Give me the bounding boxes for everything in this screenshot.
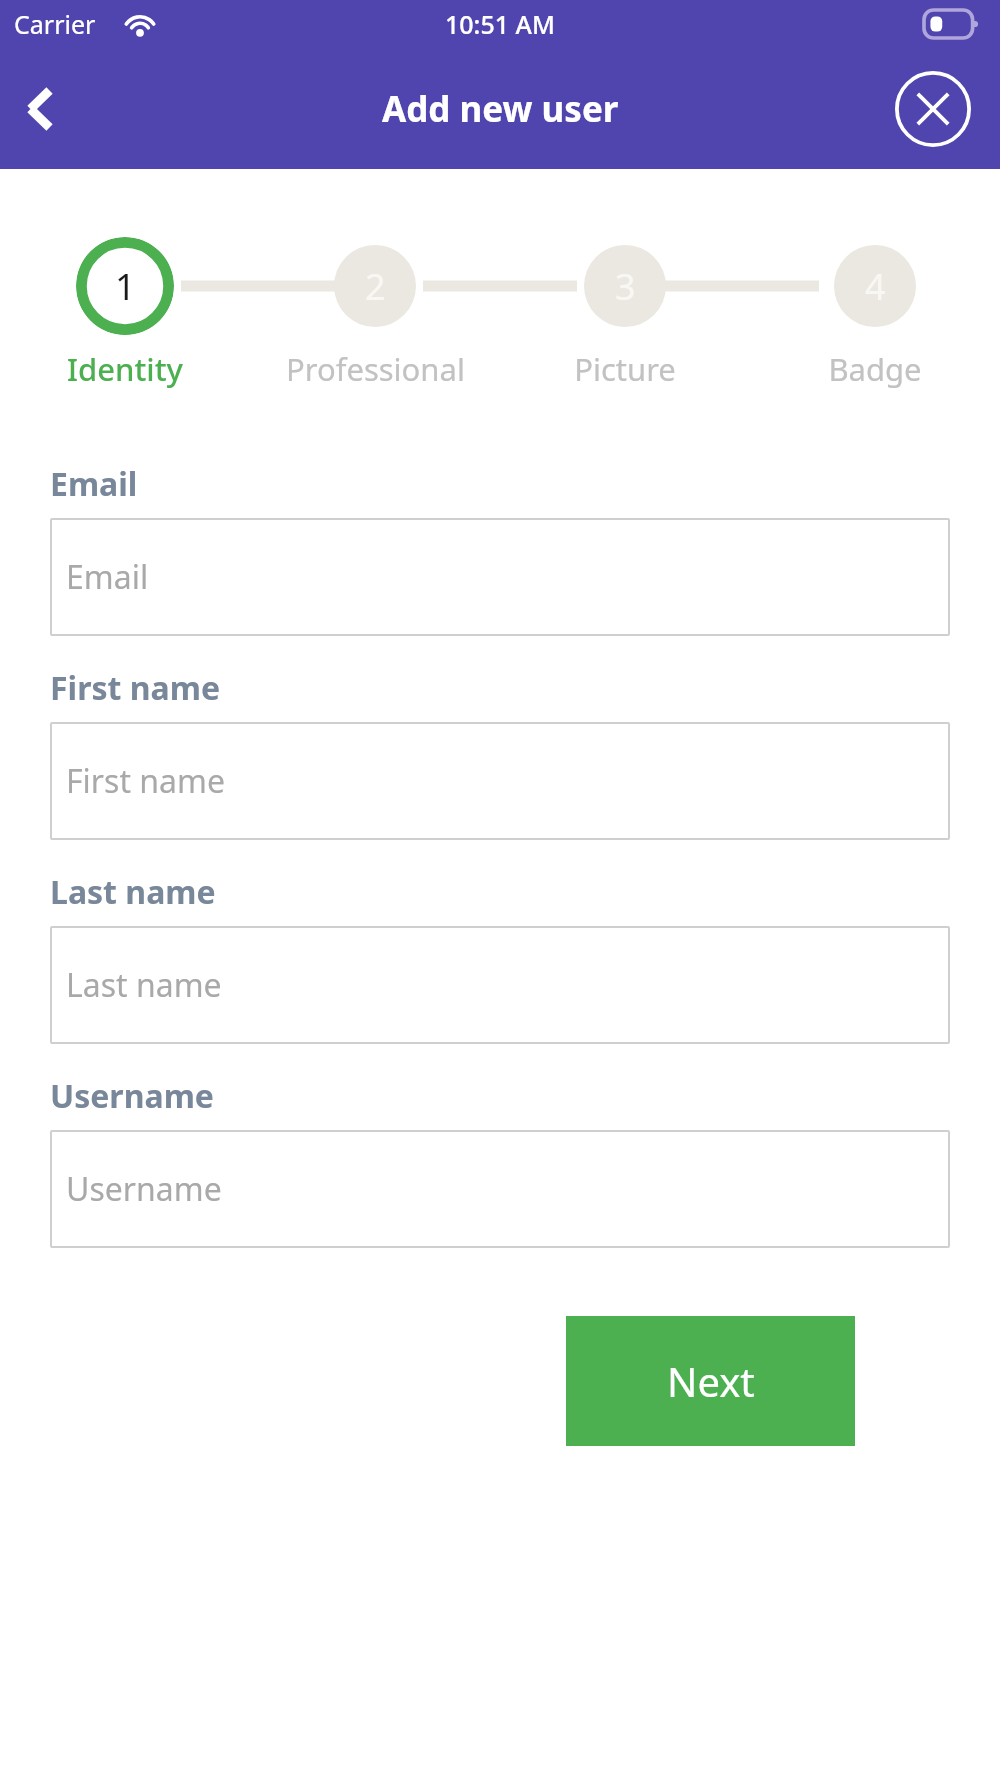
- staticText: 3: [615, 262, 636, 311]
- staticText: Professional: [286, 348, 465, 390]
- button[interactable]: 1: [76, 237, 174, 335]
- staticText: 4: [865, 262, 886, 311]
- staticText: Carrier: [14, 7, 96, 41]
- button[interactable]: Email: [50, 518, 950, 636]
- staticText: Username: [66, 1167, 222, 1211]
- staticText: Add new user: [382, 85, 619, 133]
- staticText: First name: [50, 666, 220, 710]
- button[interactable]: 3: [584, 245, 666, 327]
- button[interactable]: Close: [894, 70, 972, 148]
- staticText: Username: [50, 1074, 214, 1118]
- staticText: First name: [66, 759, 225, 803]
- button[interactable]: First name: [50, 722, 950, 840]
- button[interactable]: Username: [50, 1130, 950, 1248]
- button[interactable]: Back: [0, 69, 80, 149]
- button[interactable]: 2: [334, 245, 416, 327]
- staticText: 2: [365, 262, 386, 311]
- staticText: Last name: [50, 870, 216, 914]
- staticText: Last name: [66, 963, 222, 1007]
- staticText: Badge: [828, 348, 922, 390]
- staticText: Picture: [574, 348, 676, 390]
- staticText: Email: [50, 462, 138, 506]
- staticText: Identity: [67, 348, 183, 390]
- staticText: 1: [115, 262, 136, 311]
- staticText: 10:51 AM: [445, 7, 555, 41]
- staticText: Next: [667, 1354, 755, 1408]
- button[interactable]: 4: [834, 245, 916, 327]
- button[interactable]: Next: [566, 1316, 855, 1446]
- button[interactable]: Last name: [50, 926, 950, 1044]
- staticText: Email: [66, 555, 149, 599]
